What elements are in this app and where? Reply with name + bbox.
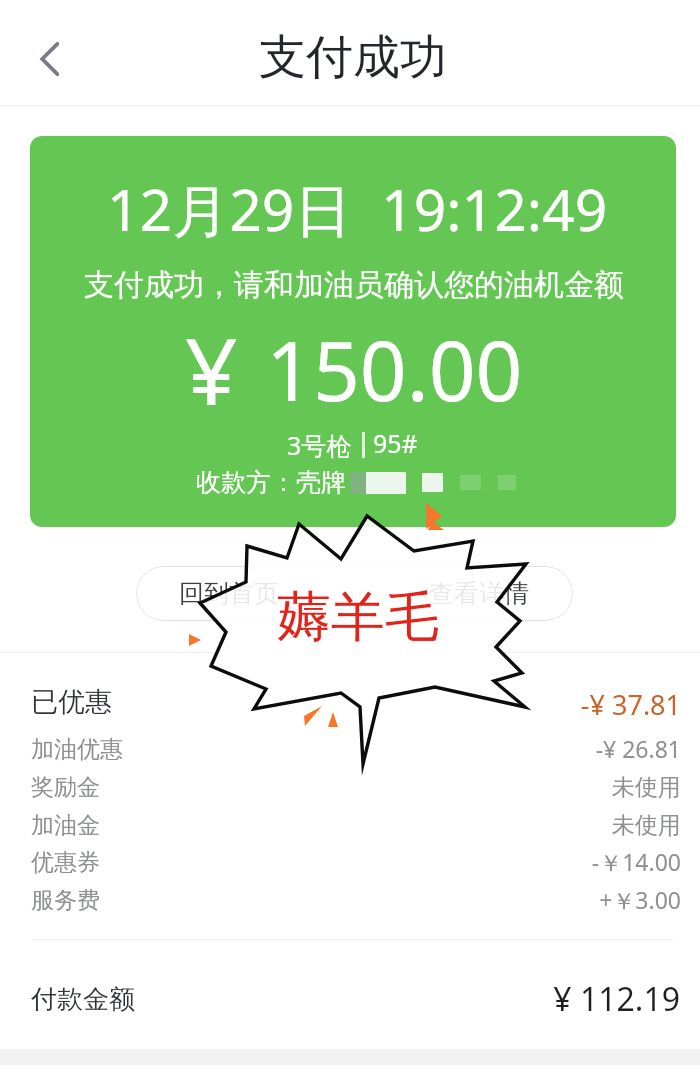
staticText: 加油优惠 <box>31 735 123 764</box>
staticText: 薅羊毛 <box>277 583 439 651</box>
staticText: 支付成功 <box>259 28 447 87</box>
button[interactable]: 回到首页 <box>179 578 279 609</box>
staticText: 95# <box>373 426 418 460</box>
staticText: ¥ <box>185 307 238 432</box>
staticText: 奖励金 <box>31 773 100 802</box>
staticText: ¥ 112.19 <box>553 977 680 1021</box>
staticText: 支付成功，请和加油员确认您的油机金额 <box>84 266 624 304</box>
staticText: 回到首页 <box>179 578 279 609</box>
staticText: 付款金额 <box>31 983 135 1016</box>
staticText: 收款方：壳牌 <box>196 467 346 498</box>
button[interactable]: 查看详情 <box>429 578 529 609</box>
staticText: -￥14.00 <box>591 846 681 877</box>
staticText: 服务费 <box>31 886 100 915</box>
staticText: +￥3.00 <box>599 884 681 915</box>
staticText: 加油金 <box>31 811 100 840</box>
staticText: 未使用 <box>612 811 681 840</box>
staticText: 12月29日 19:12:49 <box>107 170 608 248</box>
staticText: -¥ 26.81 <box>595 733 681 764</box>
staticText: 优惠券 <box>31 848 100 877</box>
staticText: 未使用 <box>612 773 681 802</box>
staticText: 查看详情 <box>429 578 529 609</box>
staticText: 150.00 <box>266 313 523 425</box>
button[interactable]: Back <box>21 29 81 89</box>
staticText: 3号枪 <box>287 428 352 462</box>
staticText: -¥ 37.81 <box>580 686 681 723</box>
staticText: 已优惠 <box>31 685 112 719</box>
